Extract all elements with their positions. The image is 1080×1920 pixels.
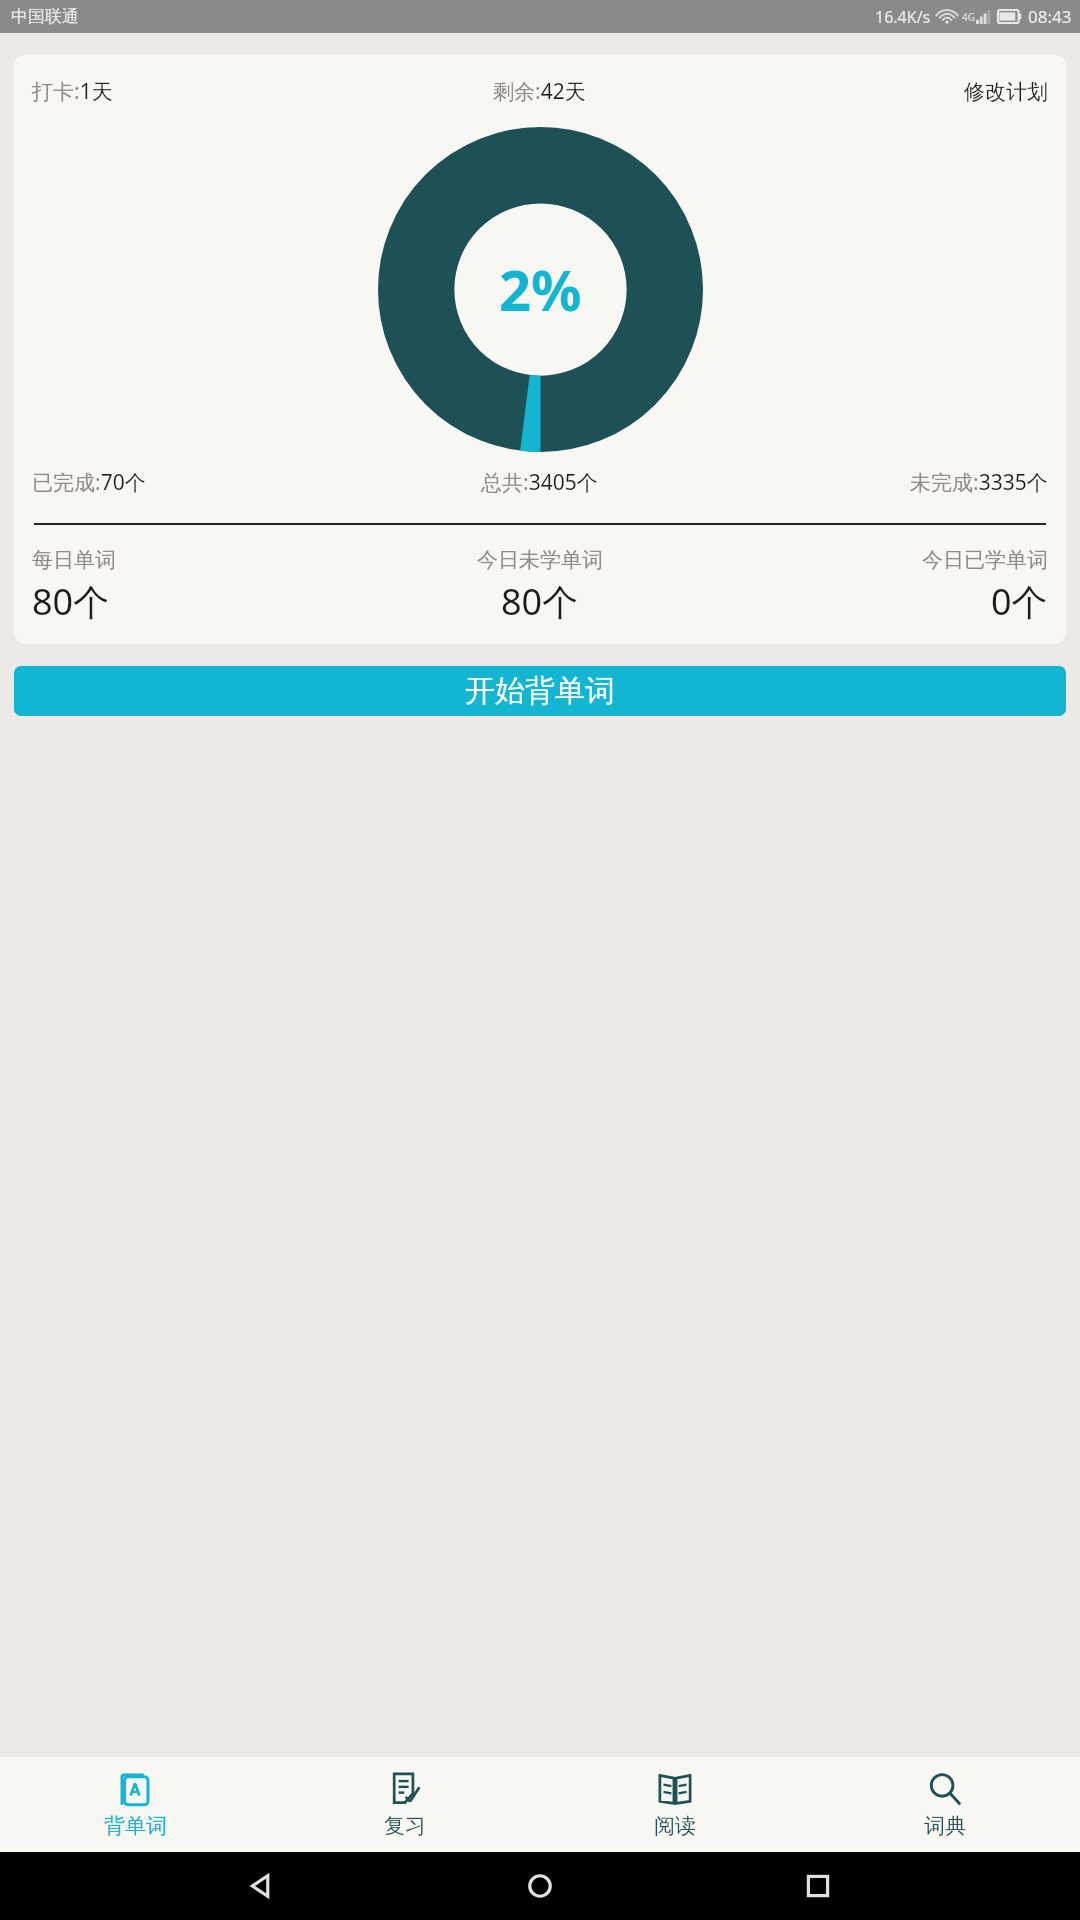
staticText: 词典: [924, 1813, 966, 1839]
staticText: 4G: [962, 10, 975, 24]
staticText: 背单词: [104, 1813, 167, 1839]
staticText: 0个: [991, 577, 1048, 626]
staticText: 08:43: [1028, 5, 1072, 28]
staticText: 修改计划: [964, 79, 1048, 105]
staticText: 2%: [499, 251, 582, 327]
button[interactable]: Recents: [802, 1870, 834, 1902]
staticText: 80个: [501, 577, 579, 626]
staticText: 每日单词: [32, 547, 116, 573]
staticText: 16.4K/s: [875, 6, 931, 28]
staticText: 中国联通: [11, 6, 79, 27]
button[interactable]: 开始背单词: [14, 666, 1066, 716]
staticText: 80个: [32, 577, 110, 626]
button[interactable]: 背单词: [0, 1757, 270, 1852]
button[interactable]: 修改计划: [709, 79, 1048, 105]
staticText: 开始背单词: [465, 672, 615, 710]
other: 词典: [927, 1771, 963, 1807]
staticText: 总共:3405个: [481, 468, 598, 497]
button[interactable]: Home: [524, 1870, 556, 1902]
staticText: 阅读: [654, 1813, 696, 1839]
other: 背单词: [117, 1771, 153, 1807]
button[interactable]: Back: [246, 1870, 278, 1902]
button[interactable]: 复习: [270, 1757, 540, 1852]
other: 复习: [387, 1771, 423, 1807]
button[interactable]: 词典: [810, 1757, 1080, 1852]
staticText: 剩余:42天: [493, 77, 586, 106]
button[interactable]: 阅读: [540, 1757, 810, 1852]
staticText: 未完成:3335个: [910, 468, 1048, 497]
staticText: 今日未学单词: [477, 547, 603, 573]
staticText: 今日已学单词: [922, 547, 1048, 573]
other: 阅读: [657, 1771, 693, 1807]
staticText: 复习: [384, 1813, 426, 1839]
staticText: 已完成:70个: [32, 468, 146, 497]
staticText: 打卡:1天: [32, 77, 113, 106]
